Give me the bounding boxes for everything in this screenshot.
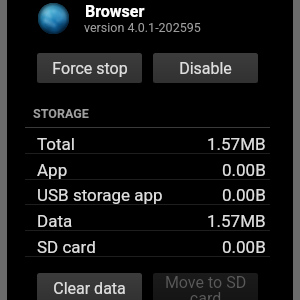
staticText: 1.57MB <box>207 211 266 231</box>
button[interactable]: Disable <box>153 53 258 83</box>
staticText: Total <box>37 134 75 154</box>
staticText: App <box>37 160 68 180</box>
button[interactable]: SD card <box>0 231 300 257</box>
button[interactable]: USB storage app <box>0 179 300 205</box>
staticText: Clear data <box>53 279 126 298</box>
button[interactable]: Clear data <box>37 273 142 300</box>
staticText: 0.00B <box>222 185 266 205</box>
staticText: Move to SD card <box>153 273 258 300</box>
staticText: Disable <box>179 59 232 78</box>
staticText: 0.00B <box>222 237 266 257</box>
button[interactable]: Move to SD card <box>153 273 258 300</box>
button[interactable]: App <box>0 154 300 180</box>
button[interactable]: Force stop <box>37 53 142 83</box>
button[interactable]: Data <box>0 205 300 231</box>
staticText: Data <box>37 211 73 231</box>
staticText: 0.00B <box>222 160 266 180</box>
staticText: USB storage app <box>37 185 163 205</box>
staticText: version 4.0.1-202595 <box>84 20 201 35</box>
staticText: STORAGE <box>33 106 89 121</box>
staticText: Browser <box>85 2 145 21</box>
staticText: 1.57MB <box>207 134 266 154</box>
staticText: SD card <box>37 237 96 257</box>
button[interactable]: Total <box>0 128 300 154</box>
staticText: Force stop <box>52 59 128 78</box>
